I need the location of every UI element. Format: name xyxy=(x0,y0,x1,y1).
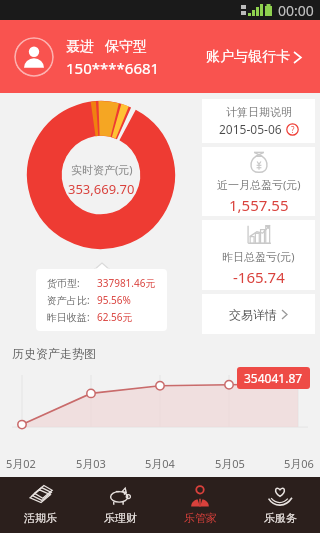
staticText: 聂进 保守型 xyxy=(66,36,147,55)
button[interactable]: Help xyxy=(286,123,299,136)
staticText: 5月04 xyxy=(145,456,175,471)
staticText: 乐理财 xyxy=(104,511,137,525)
button[interactable]: 乐服务 xyxy=(240,477,320,533)
button[interactable]: 货币型: xyxy=(36,269,167,331)
staticText: 150****6681 xyxy=(66,58,160,78)
staticText: 交易详情 xyxy=(229,307,277,322)
staticText: 62.56元 xyxy=(97,310,133,324)
staticText: 昨日收益: xyxy=(47,310,97,324)
button[interactable]: 账户与银行卡 xyxy=(202,44,306,70)
staticText: 乐服务 xyxy=(264,511,297,525)
staticText: 昨日总盈亏(元) xyxy=(222,249,295,264)
button[interactable]: 活期乐 xyxy=(0,477,80,533)
staticText: 354041.87 xyxy=(244,370,303,386)
staticText: 乐管家 xyxy=(184,511,217,525)
staticText: 近一月总盈亏(元) xyxy=(217,177,301,192)
staticText: 353,669.70 xyxy=(68,180,135,198)
staticText: 计算日期说明 xyxy=(226,105,292,119)
staticText: 5月02 xyxy=(6,456,36,471)
button[interactable]: 乐理财 xyxy=(80,477,160,533)
button[interactable]: 354041.87 xyxy=(237,367,310,389)
staticText: 00:00 xyxy=(278,1,314,20)
staticText: ? xyxy=(291,124,295,135)
staticText: 1,557.55 xyxy=(229,195,289,215)
staticText: 活期乐 xyxy=(24,511,57,525)
button[interactable]: 昨日总盈亏(元) xyxy=(202,220,315,290)
button[interactable]: 近一月总盈亏(元) xyxy=(202,147,315,216)
staticText: 历史资产走势图 xyxy=(12,346,96,361)
staticText: 337981.46元 xyxy=(97,276,156,290)
staticText: 5月06 xyxy=(284,456,314,471)
button[interactable]: 交易详情 xyxy=(202,294,315,334)
staticText: 5月03 xyxy=(76,456,106,471)
button[interactable]: Profile avatar xyxy=(14,37,54,77)
button[interactable]: 乐管家 xyxy=(160,477,240,533)
staticText: -165.74 xyxy=(233,267,285,287)
staticText: 实时资产(元) xyxy=(71,162,133,177)
button[interactable]: 计算日期说明 xyxy=(202,99,315,143)
staticText: 货币型: xyxy=(47,276,97,290)
staticText: 95.56% xyxy=(97,293,131,307)
staticText: 5月05 xyxy=(215,456,245,471)
staticText: 2015-05-06 xyxy=(219,121,282,137)
staticText: 资产占比: xyxy=(47,293,97,307)
staticText: 账户与银行卡 xyxy=(206,48,290,66)
